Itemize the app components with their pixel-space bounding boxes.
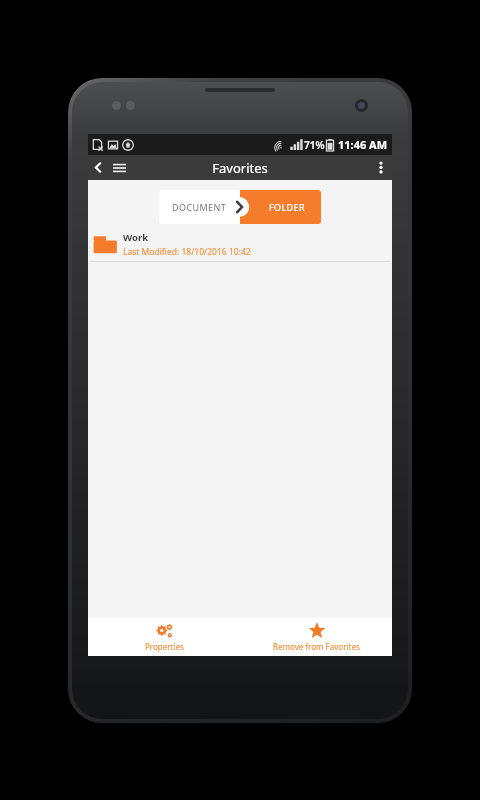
button[interactable]: Work <box>88 228 392 261</box>
button[interactable]: Remove from Favorites <box>240 618 392 656</box>
staticText: 71% <box>304 138 325 152</box>
button[interactable]: Properties <box>88 618 240 656</box>
staticText: DOCUMENT <box>172 201 227 213</box>
staticText: Work <box>123 231 149 244</box>
staticText: 11:46 AM <box>338 137 388 152</box>
button[interactable]: More options <box>370 155 392 180</box>
staticText: Favorites <box>212 159 268 177</box>
button[interactable]: Menu <box>108 155 130 180</box>
button[interactable]: FOLDER <box>240 190 321 224</box>
button[interactable]: Back <box>88 155 108 180</box>
button[interactable]: DOCUMENT <box>159 190 240 224</box>
staticText: Properties <box>145 641 184 652</box>
staticText: Remove from Favorites <box>273 641 360 652</box>
staticText: Last Modified: 18/10/2016 10:42 <box>123 246 251 258</box>
staticText: FOLDER <box>269 201 305 213</box>
